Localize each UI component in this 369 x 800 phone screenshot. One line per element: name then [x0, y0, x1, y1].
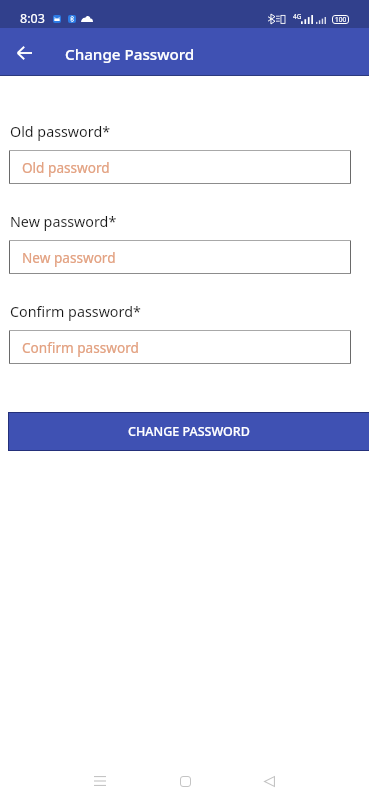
button[interactable]: Home: [165, 761, 205, 800]
staticText: Confirm password: [22, 338, 139, 357]
staticText: CHANGE PASSWORD: [128, 423, 250, 440]
staticText: Change Password: [65, 44, 195, 65]
staticText: 100: [335, 15, 347, 24]
staticText: Old password*: [10, 122, 111, 141]
button[interactable]: Old password: [9, 150, 351, 184]
button[interactable]: Recent apps: [80, 761, 120, 800]
staticText: 4G: [293, 12, 302, 21]
button[interactable]: Back: [249, 761, 289, 800]
staticText: Old password: [22, 158, 110, 177]
button[interactable]: CHANGE PASSWORD: [8, 412, 369, 451]
staticText: 8:03: [20, 10, 45, 27]
button[interactable]: Back: [6, 34, 42, 70]
staticText: New password*: [10, 212, 117, 231]
button[interactable]: New password: [9, 240, 351, 274]
staticText: Confirm password*: [10, 302, 141, 321]
button[interactable]: Confirm password: [9, 330, 351, 364]
staticText: New password: [22, 248, 116, 267]
